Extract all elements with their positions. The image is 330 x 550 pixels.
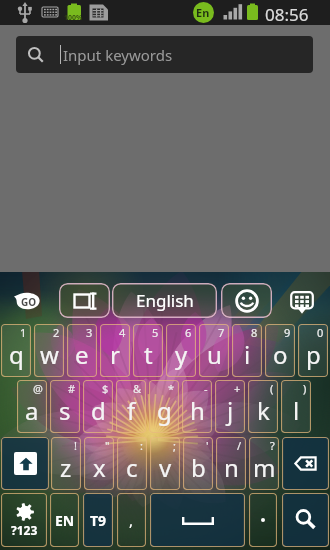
staticText: b [191, 451, 206, 484]
staticText: ! [74, 438, 77, 453]
button[interactable]: " [84, 437, 114, 490]
button[interactable]: English [112, 283, 217, 318]
staticText: v [159, 451, 172, 484]
staticText: 1 [20, 325, 27, 340]
staticText: 4 [119, 325, 126, 340]
staticText: y [175, 338, 188, 371]
button[interactable]: 8 [232, 324, 262, 377]
button[interactable]: ' [183, 437, 213, 490]
button[interactable]: : [117, 437, 147, 490]
staticText: 3 [86, 325, 93, 340]
button[interactable]: & [116, 380, 146, 433]
staticText: h [190, 394, 205, 427]
button[interactable]: * [149, 380, 179, 433]
staticText: 9 [284, 325, 291, 340]
staticText: i [244, 338, 251, 371]
staticText: l [293, 394, 300, 427]
staticText: : [140, 438, 143, 453]
button[interactable]: 1 [1, 324, 31, 377]
staticText: o [273, 338, 288, 371]
staticText: , [129, 510, 134, 530]
staticText: q [9, 338, 24, 371]
staticText: En [196, 5, 210, 20]
staticText: p [306, 338, 321, 371]
staticText: j [227, 394, 234, 427]
button[interactable]: GO [14, 292, 41, 309]
button[interactable]: ( [248, 380, 278, 433]
staticText: @ [33, 381, 43, 396]
staticText: 0 [317, 325, 324, 340]
button[interactable]: 0 [298, 324, 328, 377]
staticText: / [237, 438, 242, 453]
button[interactable]: # [50, 380, 80, 433]
staticText: + [234, 381, 241, 396]
staticText: z [60, 451, 72, 484]
button[interactable]: 9 [265, 324, 295, 377]
staticText: r [110, 338, 120, 371]
button[interactable]: Symbols [1, 493, 47, 547]
button[interactable] [249, 493, 277, 547]
staticText: * [168, 381, 175, 396]
staticText: m [253, 451, 276, 484]
button[interactable]: Input keywords [16, 36, 313, 73]
staticText: x [93, 451, 106, 484]
staticText: GO [21, 295, 37, 309]
staticText: 100% [64, 13, 83, 23]
button[interactable]: Backspace [282, 437, 329, 490]
button[interactable]: 4 [100, 324, 130, 377]
staticText: ? [270, 438, 275, 453]
staticText: ) [303, 381, 307, 396]
staticText: T9 [90, 511, 107, 530]
staticText: d [91, 394, 106, 427]
button[interactable]: 7 [199, 324, 229, 377]
staticText: s [59, 394, 71, 427]
staticText: EN [55, 511, 75, 530]
button[interactable]: - [182, 380, 212, 433]
staticText: 08:56 [265, 3, 309, 26]
button[interactable]: Change keyboard layout [59, 283, 110, 318]
button[interactable]: ) [281, 380, 311, 433]
staticText: ; [173, 438, 176, 453]
staticText: 5 [152, 325, 159, 340]
button[interactable]: EN [50, 493, 79, 547]
button[interactable]: ? [249, 437, 279, 490]
staticText: & [133, 381, 142, 396]
staticText: ' [206, 438, 209, 453]
staticText: k [257, 394, 270, 427]
button[interactable]: Shift [1, 437, 49, 490]
button[interactable]: 5 [133, 324, 163, 377]
staticText: 7 [218, 325, 225, 340]
staticText: 8 [251, 325, 258, 340]
button[interactable]: Search [282, 493, 329, 547]
staticText: f [127, 394, 136, 427]
button[interactable]: 6 [166, 324, 196, 377]
staticText: 2 [53, 325, 60, 340]
staticText: c [126, 451, 138, 484]
staticText: English [136, 289, 194, 312]
button[interactable]: Hide keyboard [290, 291, 314, 314]
staticText: g [157, 394, 172, 427]
button[interactable]: ! [51, 437, 81, 490]
button[interactable]: + [215, 380, 245, 433]
staticText: " [105, 438, 110, 453]
button[interactable]: 3 [67, 324, 97, 377]
button[interactable]: @ [17, 380, 47, 433]
button[interactable]: 2 [34, 324, 64, 377]
staticText: $ [102, 381, 109, 396]
staticText: 6 [185, 325, 192, 340]
staticText: # [68, 381, 76, 396]
staticText: ( [270, 381, 274, 396]
button[interactable]: Emoji [221, 283, 272, 318]
button[interactable]: , [117, 493, 146, 547]
staticText: u [207, 338, 222, 371]
staticText: - [204, 381, 208, 396]
staticText: e [75, 338, 89, 371]
button[interactable]: ; [150, 437, 180, 490]
button[interactable]: Space [150, 493, 245, 547]
staticText: w [40, 338, 59, 371]
button[interactable]: / [216, 437, 246, 490]
staticText: a [25, 394, 39, 427]
staticText: t [144, 338, 153, 371]
button[interactable]: $ [83, 380, 113, 433]
button[interactable]: T9 [83, 493, 113, 547]
